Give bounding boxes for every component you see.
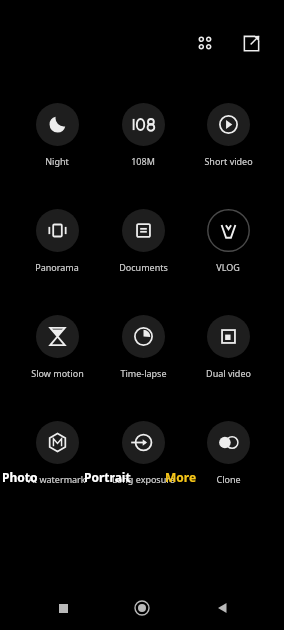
staticText: Documents — [119, 261, 168, 273]
staticText: Time-lapse — [120, 367, 167, 379]
button[interactable]: Camera modes grid — [190, 28, 220, 58]
staticText: VLOG — [216, 261, 240, 273]
button[interactable]: 108M — [100, 103, 186, 167]
button[interactable]: Panorama — [14, 209, 100, 273]
staticText: Panorama — [35, 261, 79, 273]
staticText: Slow motion — [31, 367, 84, 379]
staticText: Clone — [216, 473, 241, 485]
button[interactable]: Dual video — [186, 315, 270, 379]
button[interactable]: Home — [125, 591, 159, 625]
button[interactable]: Clone — [186, 421, 270, 485]
button[interactable]: Edit — [236, 28, 266, 58]
staticText: Short video — [204, 155, 253, 167]
button[interactable]: Time-lapse — [100, 315, 186, 379]
button[interactable]: Back — [205, 591, 239, 625]
staticText: Dual video — [206, 367, 251, 379]
staticText: More — [165, 469, 197, 485]
button[interactable]: Short video — [186, 103, 270, 167]
staticText: Long exposure — [112, 473, 175, 485]
staticText: Portrait — [84, 469, 131, 485]
button[interactable]: Slow motion — [14, 315, 100, 379]
staticText: 108M — [131, 155, 155, 167]
button[interactable]: Photo — [0, 463, 48, 491]
staticText: Night — [45, 155, 69, 167]
button[interactable]: Portrait — [74, 463, 141, 491]
button[interactable]: More — [155, 463, 207, 491]
button[interactable]: Recents — [46, 591, 80, 625]
button[interactable]: VLOG — [186, 209, 270, 273]
button[interactable]: Night — [14, 103, 100, 167]
button[interactable]: Documents — [100, 209, 186, 273]
button[interactable]: Long exposure — [100, 421, 186, 485]
staticText: AI watermark — [28, 473, 86, 485]
button[interactable]: AI watermark — [14, 421, 100, 485]
staticText: Photo — [2, 469, 38, 485]
